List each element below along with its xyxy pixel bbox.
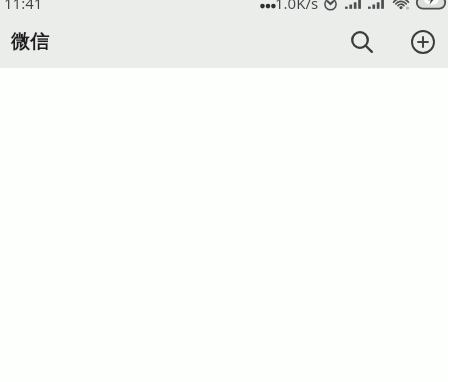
button[interactable]: Search	[339, 19, 382, 62]
staticText: 微信	[11, 30, 49, 54]
staticText: 11:41	[4, 0, 43, 13]
button[interactable]: Add	[401, 20, 444, 63]
staticText: 1.0K/s	[275, 0, 319, 13]
